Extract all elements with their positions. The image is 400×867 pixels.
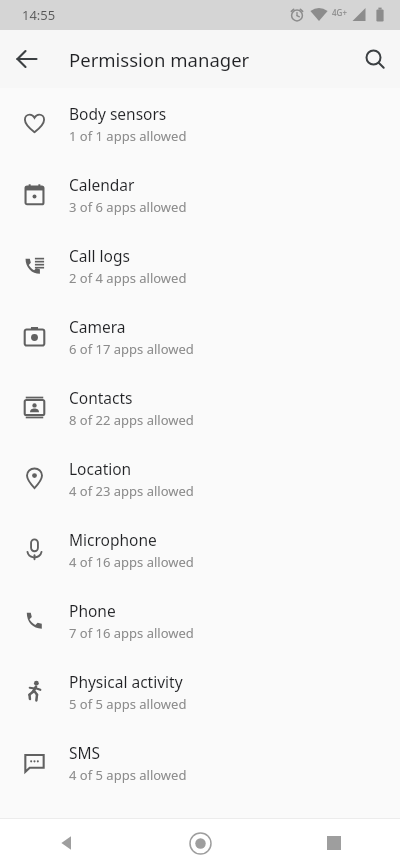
button[interactable]: Call logs bbox=[0, 230, 400, 301]
staticText: Call logs bbox=[69, 245, 130, 266]
staticText: SMS bbox=[69, 742, 101, 763]
button[interactable]: Physical activity bbox=[0, 656, 400, 727]
staticText: 14:55 bbox=[22, 6, 56, 24]
staticText: Physical activity bbox=[69, 671, 183, 692]
staticText: Permission manager bbox=[69, 47, 250, 72]
button[interactable]: Phone bbox=[0, 585, 400, 656]
button[interactable]: Location bbox=[0, 443, 400, 514]
staticText: Contacts bbox=[69, 387, 133, 408]
staticText: Camera bbox=[69, 316, 126, 337]
staticText: Microphone bbox=[69, 529, 157, 550]
button[interactable]: Search bbox=[355, 39, 395, 79]
button[interactable]: SMS bbox=[0, 727, 400, 798]
staticText: 7 of 16 apps allowed bbox=[69, 624, 194, 642]
staticText: 4 of 5 apps allowed bbox=[69, 766, 187, 784]
button[interactable]: Contacts bbox=[0, 372, 400, 443]
staticText: Calendar bbox=[69, 174, 135, 195]
staticText: 5 of 5 apps allowed bbox=[69, 695, 187, 713]
button[interactable]: Body sensors bbox=[0, 88, 400, 159]
staticText: 4G+ bbox=[332, 7, 347, 18]
staticText: Phone bbox=[69, 600, 116, 621]
staticText: 1 of 1 apps allowed bbox=[69, 127, 187, 145]
staticText: 2 of 4 apps allowed bbox=[69, 269, 187, 287]
staticText: 8 of 22 apps allowed bbox=[69, 411, 194, 429]
staticText: Body sensors bbox=[69, 103, 167, 124]
button[interactable]: Back bbox=[7, 39, 47, 79]
button[interactable]: Recent apps bbox=[267, 819, 400, 867]
button[interactable]: Home bbox=[134, 819, 267, 867]
button[interactable]: Calendar bbox=[0, 159, 400, 230]
staticText: 4 of 16 apps allowed bbox=[69, 553, 194, 571]
button[interactable]: Back bbox=[0, 819, 134, 867]
button[interactable]: Camera bbox=[0, 301, 400, 372]
staticText: 6 of 17 apps allowed bbox=[69, 340, 194, 358]
button[interactable]: Microphone bbox=[0, 514, 400, 585]
staticText: 3 of 6 apps allowed bbox=[69, 198, 187, 216]
staticText: 4 of 23 apps allowed bbox=[69, 482, 194, 500]
staticText: Location bbox=[69, 458, 132, 479]
